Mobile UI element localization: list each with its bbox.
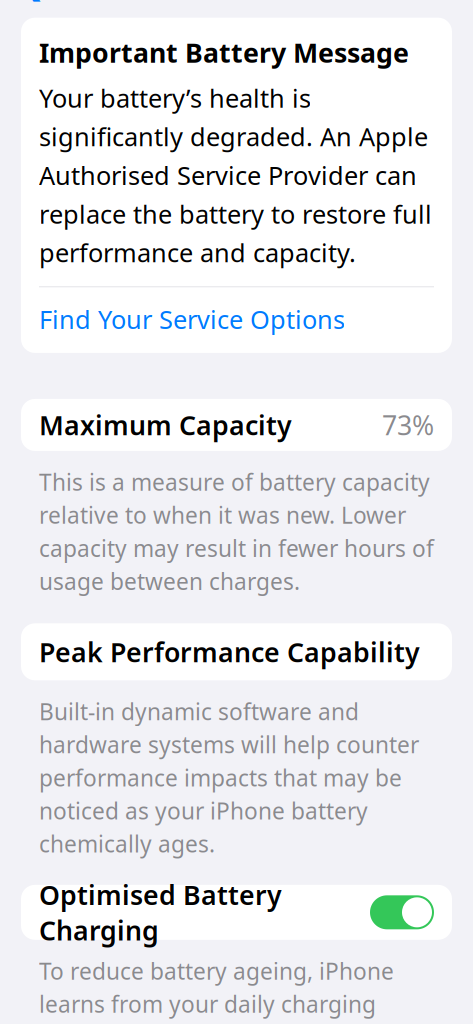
staticText: Maximum Capacity <box>39 407 292 443</box>
staticText: Peak Performance Capability <box>39 634 420 669</box>
button[interactable]: Back <box>10 0 54 5</box>
staticText: This is a measure of battery capacity re… <box>39 467 434 596</box>
staticText: Your battery’s health is significantly d… <box>39 81 432 269</box>
button[interactable]: Find Your Service Options <box>39 287 434 351</box>
button[interactable]: Optimised Battery Charging <box>21 885 452 940</box>
staticText: Optimised Battery Charging <box>39 877 282 948</box>
staticText: Built-in dynamic software and hardware s… <box>39 696 419 859</box>
staticText: ❮ <box>18 0 45 1</box>
button[interactable]: Maximum Capacity <box>21 399 452 451</box>
staticText: 73% <box>382 407 434 443</box>
staticText: Important Battery Message <box>39 35 409 70</box>
staticText: Find Your Service Options <box>39 302 345 336</box>
button[interactable]: Peak Performance Capability <box>21 623 452 680</box>
staticText: To reduce battery ageing, iPhone learns … <box>39 956 425 1024</box>
